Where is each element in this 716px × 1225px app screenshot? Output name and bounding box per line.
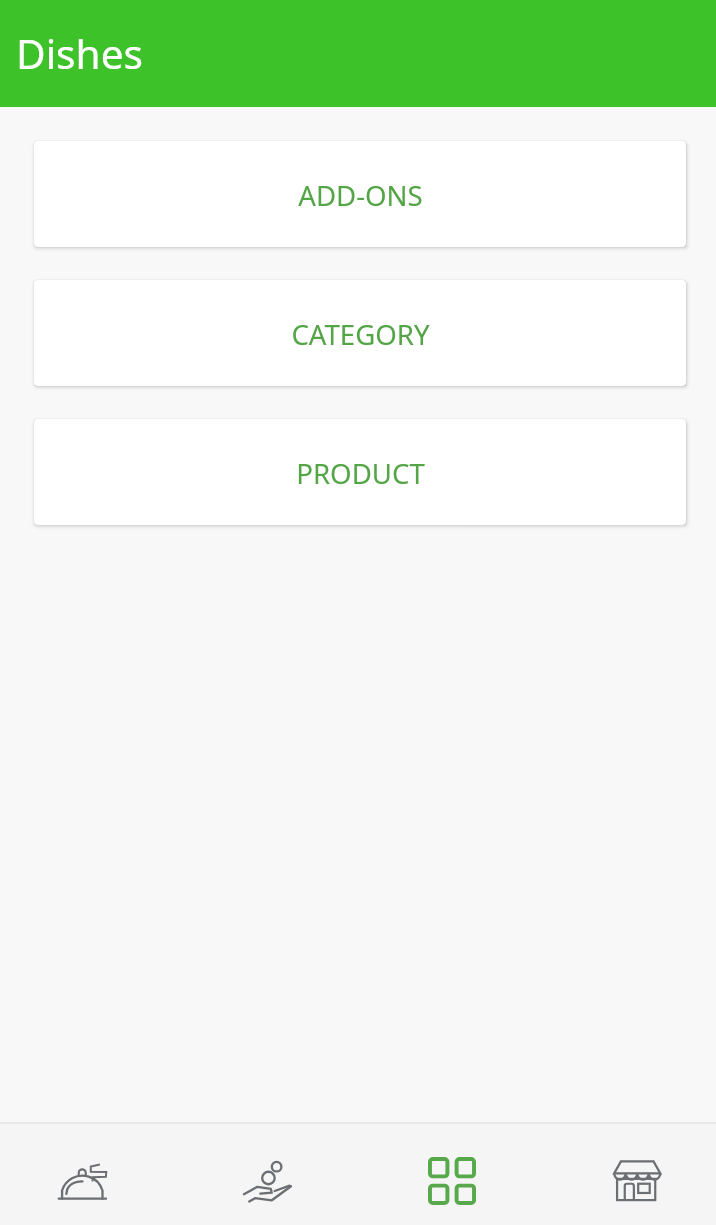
button[interactable]: Store	[591, 1137, 683, 1225]
button[interactable]: CATEGORY	[34, 280, 686, 386]
button[interactable]: Categories	[406, 1137, 498, 1225]
button[interactable]: Dishes	[36, 1137, 128, 1225]
staticText: ADD-ONS	[298, 176, 423, 214]
staticText: PRODUCT	[296, 454, 425, 492]
button[interactable]: PRODUCT	[34, 419, 686, 525]
staticText: CATEGORY	[291, 315, 430, 353]
button[interactable]: Offers	[221, 1137, 313, 1225]
staticText: Dishes	[16, 26, 143, 81]
button[interactable]: ADD-ONS	[34, 141, 686, 247]
